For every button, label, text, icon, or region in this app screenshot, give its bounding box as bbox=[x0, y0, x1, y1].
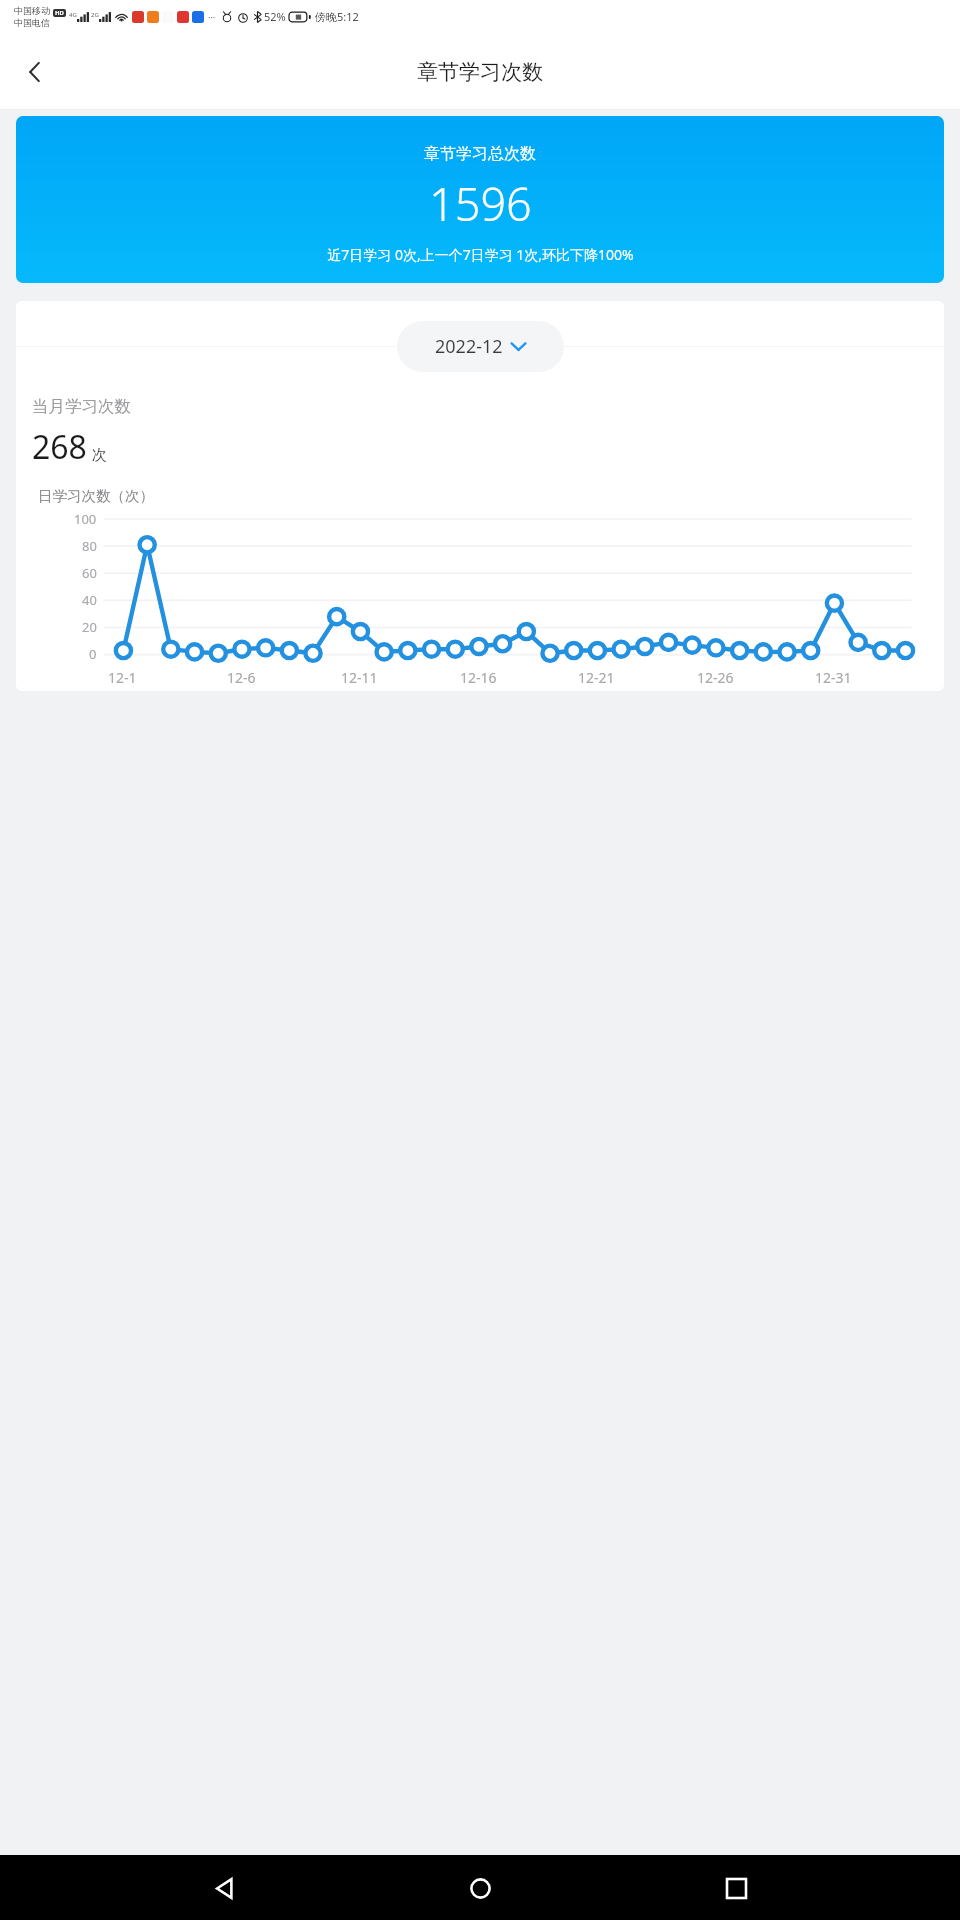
button[interactable]: 最近任务 bbox=[705, 1857, 767, 1919]
staticText: 52% bbox=[264, 9, 286, 24]
staticText: 12-6 bbox=[227, 668, 256, 687]
staticText: 章节学习次数 bbox=[417, 59, 543, 85]
staticText: 12-31 bbox=[815, 668, 852, 687]
button[interactable]: 返回 bbox=[194, 1857, 256, 1919]
button[interactable]: 章节学习总次数 bbox=[16, 116, 944, 283]
staticText: 2022-12 bbox=[435, 334, 503, 359]
staticText: 100 bbox=[74, 510, 97, 528]
staticText: 中国移动 bbox=[14, 5, 50, 16]
staticText: 80 bbox=[82, 537, 97, 555]
staticText: 12-11 bbox=[341, 668, 378, 687]
staticText: 40 bbox=[82, 591, 97, 609]
staticText: 次 bbox=[92, 446, 107, 465]
staticText: 12-16 bbox=[460, 668, 497, 687]
staticText: 当月学习次数 bbox=[32, 396, 131, 417]
staticText: 0 bbox=[89, 645, 97, 663]
button[interactable]: 主页 bbox=[449, 1857, 511, 1919]
staticText: 268 bbox=[32, 425, 87, 469]
staticText: 1596 bbox=[429, 173, 532, 234]
staticText: ··· bbox=[208, 11, 216, 23]
button[interactable]: 返回 bbox=[6, 43, 64, 101]
staticText: 日学习次数（次） bbox=[38, 487, 154, 505]
staticText: 近7日学习 0次,上一个7日学习 1次,环比下降100% bbox=[327, 245, 634, 264]
staticText: 60 bbox=[82, 564, 97, 582]
staticText: 中国电信 bbox=[14, 17, 50, 28]
staticText: 2G bbox=[91, 11, 99, 19]
button[interactable]: 2022-12 bbox=[397, 321, 564, 372]
staticText: 20 bbox=[82, 618, 97, 636]
staticText: 12-1 bbox=[108, 668, 137, 687]
staticText: 12-26 bbox=[697, 668, 734, 687]
staticText: 12-21 bbox=[578, 668, 615, 687]
staticText: 章节学习总次数 bbox=[424, 144, 536, 164]
staticText: 傍晚5:12 bbox=[315, 9, 359, 24]
staticText: 4G bbox=[69, 11, 77, 19]
staticText: HD bbox=[55, 9, 64, 17]
